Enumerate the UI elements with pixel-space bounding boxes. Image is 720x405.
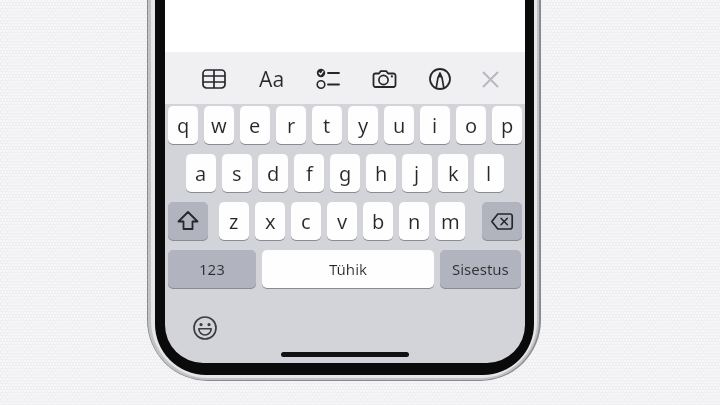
button[interactable]: t bbox=[312, 106, 342, 144]
staticText: z bbox=[229, 208, 239, 235]
staticText: d bbox=[267, 160, 280, 187]
staticText: p bbox=[501, 112, 514, 139]
button[interactable]: j bbox=[402, 154, 432, 192]
button[interactable]: h bbox=[366, 154, 396, 192]
button[interactable]: a bbox=[186, 154, 216, 192]
staticText: s bbox=[232, 160, 242, 187]
staticText: q bbox=[177, 112, 190, 139]
button[interactable]: o bbox=[456, 106, 486, 144]
button[interactable]: m bbox=[435, 202, 465, 240]
button[interactable] bbox=[189, 312, 221, 344]
button[interactable]: v bbox=[327, 202, 357, 240]
button[interactable]: f bbox=[294, 154, 324, 192]
button[interactable]: Aa bbox=[248, 57, 296, 101]
staticText: h bbox=[375, 160, 388, 187]
button[interactable]: q bbox=[168, 106, 198, 144]
button[interactable]: s bbox=[222, 154, 252, 192]
button[interactable]: z bbox=[219, 202, 249, 240]
button[interactable]: l bbox=[474, 154, 504, 192]
button[interactable]: Tühik bbox=[262, 250, 434, 288]
button[interactable]: d bbox=[258, 154, 288, 192]
button[interactable]: r bbox=[276, 106, 306, 144]
button[interactable]: e bbox=[240, 106, 270, 144]
staticText: w bbox=[211, 112, 227, 139]
staticText: Aa bbox=[259, 65, 285, 94]
staticText: u bbox=[393, 112, 406, 139]
button[interactable]: i bbox=[420, 106, 450, 144]
button[interactable]: b bbox=[363, 202, 393, 240]
staticText: r bbox=[287, 112, 296, 139]
staticText: b bbox=[372, 208, 385, 235]
button[interactable] bbox=[418, 57, 462, 101]
button[interactable]: y bbox=[348, 106, 378, 144]
button[interactable]: Sisestus bbox=[440, 250, 521, 288]
staticText: o bbox=[465, 112, 478, 139]
button[interactable] bbox=[306, 57, 350, 101]
staticText: Sisestus bbox=[452, 259, 509, 279]
button[interactable]: x bbox=[255, 202, 285, 240]
staticText: e bbox=[249, 112, 261, 139]
button[interactable]: u bbox=[384, 106, 414, 144]
staticText: g bbox=[339, 160, 352, 187]
button[interactable]: n bbox=[399, 202, 429, 240]
staticText: m bbox=[441, 208, 460, 235]
staticText: c bbox=[301, 208, 311, 235]
button[interactable]: k bbox=[438, 154, 468, 192]
button[interactable]: c bbox=[291, 202, 321, 240]
button[interactable]: p bbox=[492, 106, 522, 144]
button[interactable]: 123 bbox=[168, 250, 256, 288]
button[interactable]: g bbox=[330, 154, 360, 192]
staticText: f bbox=[306, 160, 313, 187]
button[interactable]: w bbox=[204, 106, 234, 144]
button[interactable] bbox=[468, 57, 512, 101]
staticText: l bbox=[486, 160, 492, 187]
staticText: i bbox=[432, 112, 438, 139]
staticText: x bbox=[265, 208, 276, 235]
button[interactable] bbox=[192, 57, 236, 101]
staticText: v bbox=[337, 208, 348, 235]
staticText: Tühik bbox=[329, 259, 368, 279]
staticText: 123 bbox=[199, 259, 225, 279]
button[interactable] bbox=[168, 202, 208, 240]
staticText: y bbox=[358, 112, 369, 139]
button[interactable] bbox=[363, 57, 407, 101]
button[interactable] bbox=[482, 202, 522, 240]
staticText: t bbox=[323, 112, 331, 139]
staticText: k bbox=[448, 160, 459, 187]
staticText: j bbox=[414, 160, 420, 187]
staticText: n bbox=[408, 208, 421, 235]
staticText: a bbox=[195, 160, 207, 187]
